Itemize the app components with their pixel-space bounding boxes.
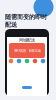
staticText: 限时优惠 · 新客立减: [13, 48, 40, 53]
staticText: 随需而变的即时配送: [5, 13, 47, 28]
button[interactable]: Service: [41, 59, 45, 63]
button[interactable]: Service: [9, 59, 13, 63]
button[interactable]: Service: [33, 59, 37, 63]
staticText: 覆盖全国 · 30 分钟送达: [5, 29, 46, 34]
button[interactable]: [22, 86, 32, 89]
button[interactable]: Service: [25, 59, 29, 63]
button[interactable]: Service: [17, 59, 21, 63]
staticText: 同城配送: [19, 37, 35, 43]
